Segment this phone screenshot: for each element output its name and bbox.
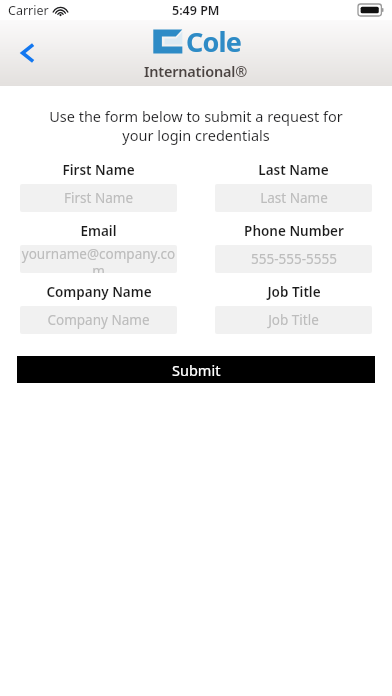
button[interactable]: 555-555-5555	[215, 245, 372, 273]
button[interactable]: Company Name	[20, 306, 177, 334]
staticText: Company Name	[46, 283, 152, 301]
staticText: First Name	[62, 161, 135, 179]
staticText: Job Title	[267, 283, 321, 301]
staticText: Carrier	[8, 2, 49, 19]
button[interactable]: Job Title	[215, 306, 372, 334]
staticText: yourname@company.com	[20, 245, 177, 273]
staticText: Phone Number	[244, 222, 344, 240]
staticText: International®	[144, 61, 248, 81]
staticText: Submit	[172, 360, 221, 380]
staticText: Last Name	[260, 189, 328, 207]
staticText: Use the form below to submit a request f…	[16, 106, 376, 145]
staticText: Email	[80, 222, 117, 240]
button[interactable]: Last Name	[215, 184, 372, 212]
button[interactable]: Back	[6, 31, 50, 75]
staticText: Last Name	[258, 161, 329, 179]
staticText: Company Name	[47, 311, 150, 329]
button[interactable]: First Name	[20, 184, 177, 212]
button[interactable]: Submit	[17, 356, 375, 383]
staticText: Cole	[186, 23, 242, 60]
staticText: 555-555-5555	[251, 250, 337, 268]
staticText: 5:49 PM	[172, 2, 220, 19]
staticText: Job Title	[268, 311, 319, 329]
staticText: First Name	[64, 189, 133, 207]
button[interactable]: yourname@company.com	[20, 245, 177, 273]
